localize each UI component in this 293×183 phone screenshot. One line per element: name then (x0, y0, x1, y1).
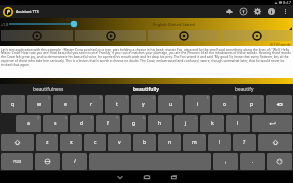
staticText: ( (222, 116, 223, 120)
staticText: beautify (235, 86, 254, 93)
button[interactable]: a (16, 115, 41, 132)
staticText: / (74, 158, 76, 165)
button[interactable]: Emoji (267, 153, 292, 170)
button[interactable]: Back (112, 171, 128, 183)
button[interactable]: Change keyboard (35, 153, 60, 170)
button[interactable]: k (200, 115, 224, 132)
button[interactable]: Let's test application with this example… (1, 47, 292, 78)
staticText: beautifully (133, 86, 159, 93)
staticText: ' (104, 135, 105, 139)
button[interactable]: z (36, 134, 58, 151)
button[interactable]: Language (148, 18, 293, 30)
staticText: j (185, 120, 187, 127)
button[interactable]: p (239, 95, 264, 113)
button[interactable]: m (183, 134, 206, 151)
staticText: 3 (74, 96, 76, 100)
staticText: ; (154, 135, 155, 139)
button[interactable]: y (131, 95, 156, 113)
button[interactable]: ?123 (1, 153, 33, 170)
staticText: r (90, 101, 93, 108)
staticText: * (55, 135, 57, 139)
staticText: @ (37, 116, 40, 120)
button[interactable]: Recents (166, 171, 182, 183)
button[interactable]: More options (278, 5, 292, 18)
staticText: d (80, 120, 84, 127)
staticText: a (27, 120, 30, 127)
button[interactable]: s (43, 115, 68, 132)
button[interactable]: Speech rate (8, 18, 82, 30)
staticText: 1 (22, 96, 24, 100)
staticText: 8 (207, 96, 209, 100)
button[interactable]: f (96, 115, 120, 132)
button[interactable]: beautifully (97, 84, 195, 94)
staticText: i (197, 101, 199, 108)
button[interactable]: beautify (195, 84, 293, 94)
staticText: 8:47 (283, 0, 291, 5)
button[interactable]: ? (233, 134, 256, 151)
staticText: 2 (48, 96, 50, 100)
button[interactable]: x (60, 134, 82, 151)
staticText: 6 (153, 96, 155, 100)
button[interactable]: o (212, 95, 237, 113)
button[interactable]: beautifulness (0, 84, 97, 94)
button[interactable]: Record (148, 30, 219, 41)
button[interactable]: Shift (1, 134, 34, 151)
button[interactable]: / (62, 153, 87, 170)
button[interactable]: App logo (3, 7, 13, 17)
button[interactable]: Play (75, 30, 146, 41)
staticText: 0 (261, 96, 263, 100)
staticText: % (116, 116, 119, 120)
button[interactable]: Settings (250, 5, 264, 18)
button[interactable]: e (53, 95, 77, 113)
staticText: e (64, 101, 67, 108)
staticText: Assistant TTS (16, 9, 39, 14)
button[interactable]: n (158, 134, 181, 151)
staticText: & (143, 116, 145, 120)
button[interactable]: Backspace (266, 95, 292, 113)
staticText: h (158, 120, 162, 127)
button[interactable]: q (1, 95, 25, 113)
button[interactable]: b (133, 134, 156, 151)
staticText: ? (203, 135, 205, 139)
button[interactable]: Stop (1, 30, 73, 41)
button[interactable]: r (79, 95, 103, 113)
button[interactable]: Enter (252, 115, 292, 132)
button[interactable]: ! (208, 134, 231, 151)
button[interactable]: w (27, 95, 51, 113)
staticText: 4 (100, 96, 102, 100)
staticText: k (211, 120, 214, 127)
button[interactable]: , (213, 153, 238, 170)
button[interactable]: t (105, 95, 129, 113)
staticText: 5 (126, 96, 128, 100)
button[interactable]: Info (264, 5, 278, 18)
button[interactable]: Upload (222, 5, 236, 18)
staticText: g (132, 120, 136, 127)
button[interactable]: Home (139, 171, 155, 183)
staticText: 9 (234, 96, 236, 100)
staticText: " (79, 135, 81, 139)
button[interactable]: u (158, 95, 183, 113)
button[interactable]: g (122, 115, 146, 132)
staticText: z (46, 139, 49, 146)
button[interactable]: v (108, 134, 131, 151)
staticText: ? (243, 139, 246, 146)
staticText: $ (91, 116, 93, 120)
button[interactable]: c (84, 134, 106, 151)
button[interactable]: d (70, 115, 94, 132)
button[interactable]: i (185, 95, 210, 113)
button[interactable]: l (226, 115, 250, 132)
button[interactable]: j (174, 115, 198, 132)
button[interactable]: . (240, 153, 265, 170)
staticText: f (107, 120, 109, 127)
staticText: y (142, 101, 145, 108)
button[interactable]: Save (221, 30, 292, 41)
staticText: - (170, 116, 171, 120)
button[interactable]: h (148, 115, 172, 132)
staticText: ) (248, 116, 249, 120)
button[interactable]: Shift (258, 134, 292, 151)
staticText: + (195, 116, 197, 120)
staticText: . (252, 158, 254, 165)
button[interactable]: Help (236, 5, 250, 18)
staticText: beautifulness (33, 86, 64, 93)
